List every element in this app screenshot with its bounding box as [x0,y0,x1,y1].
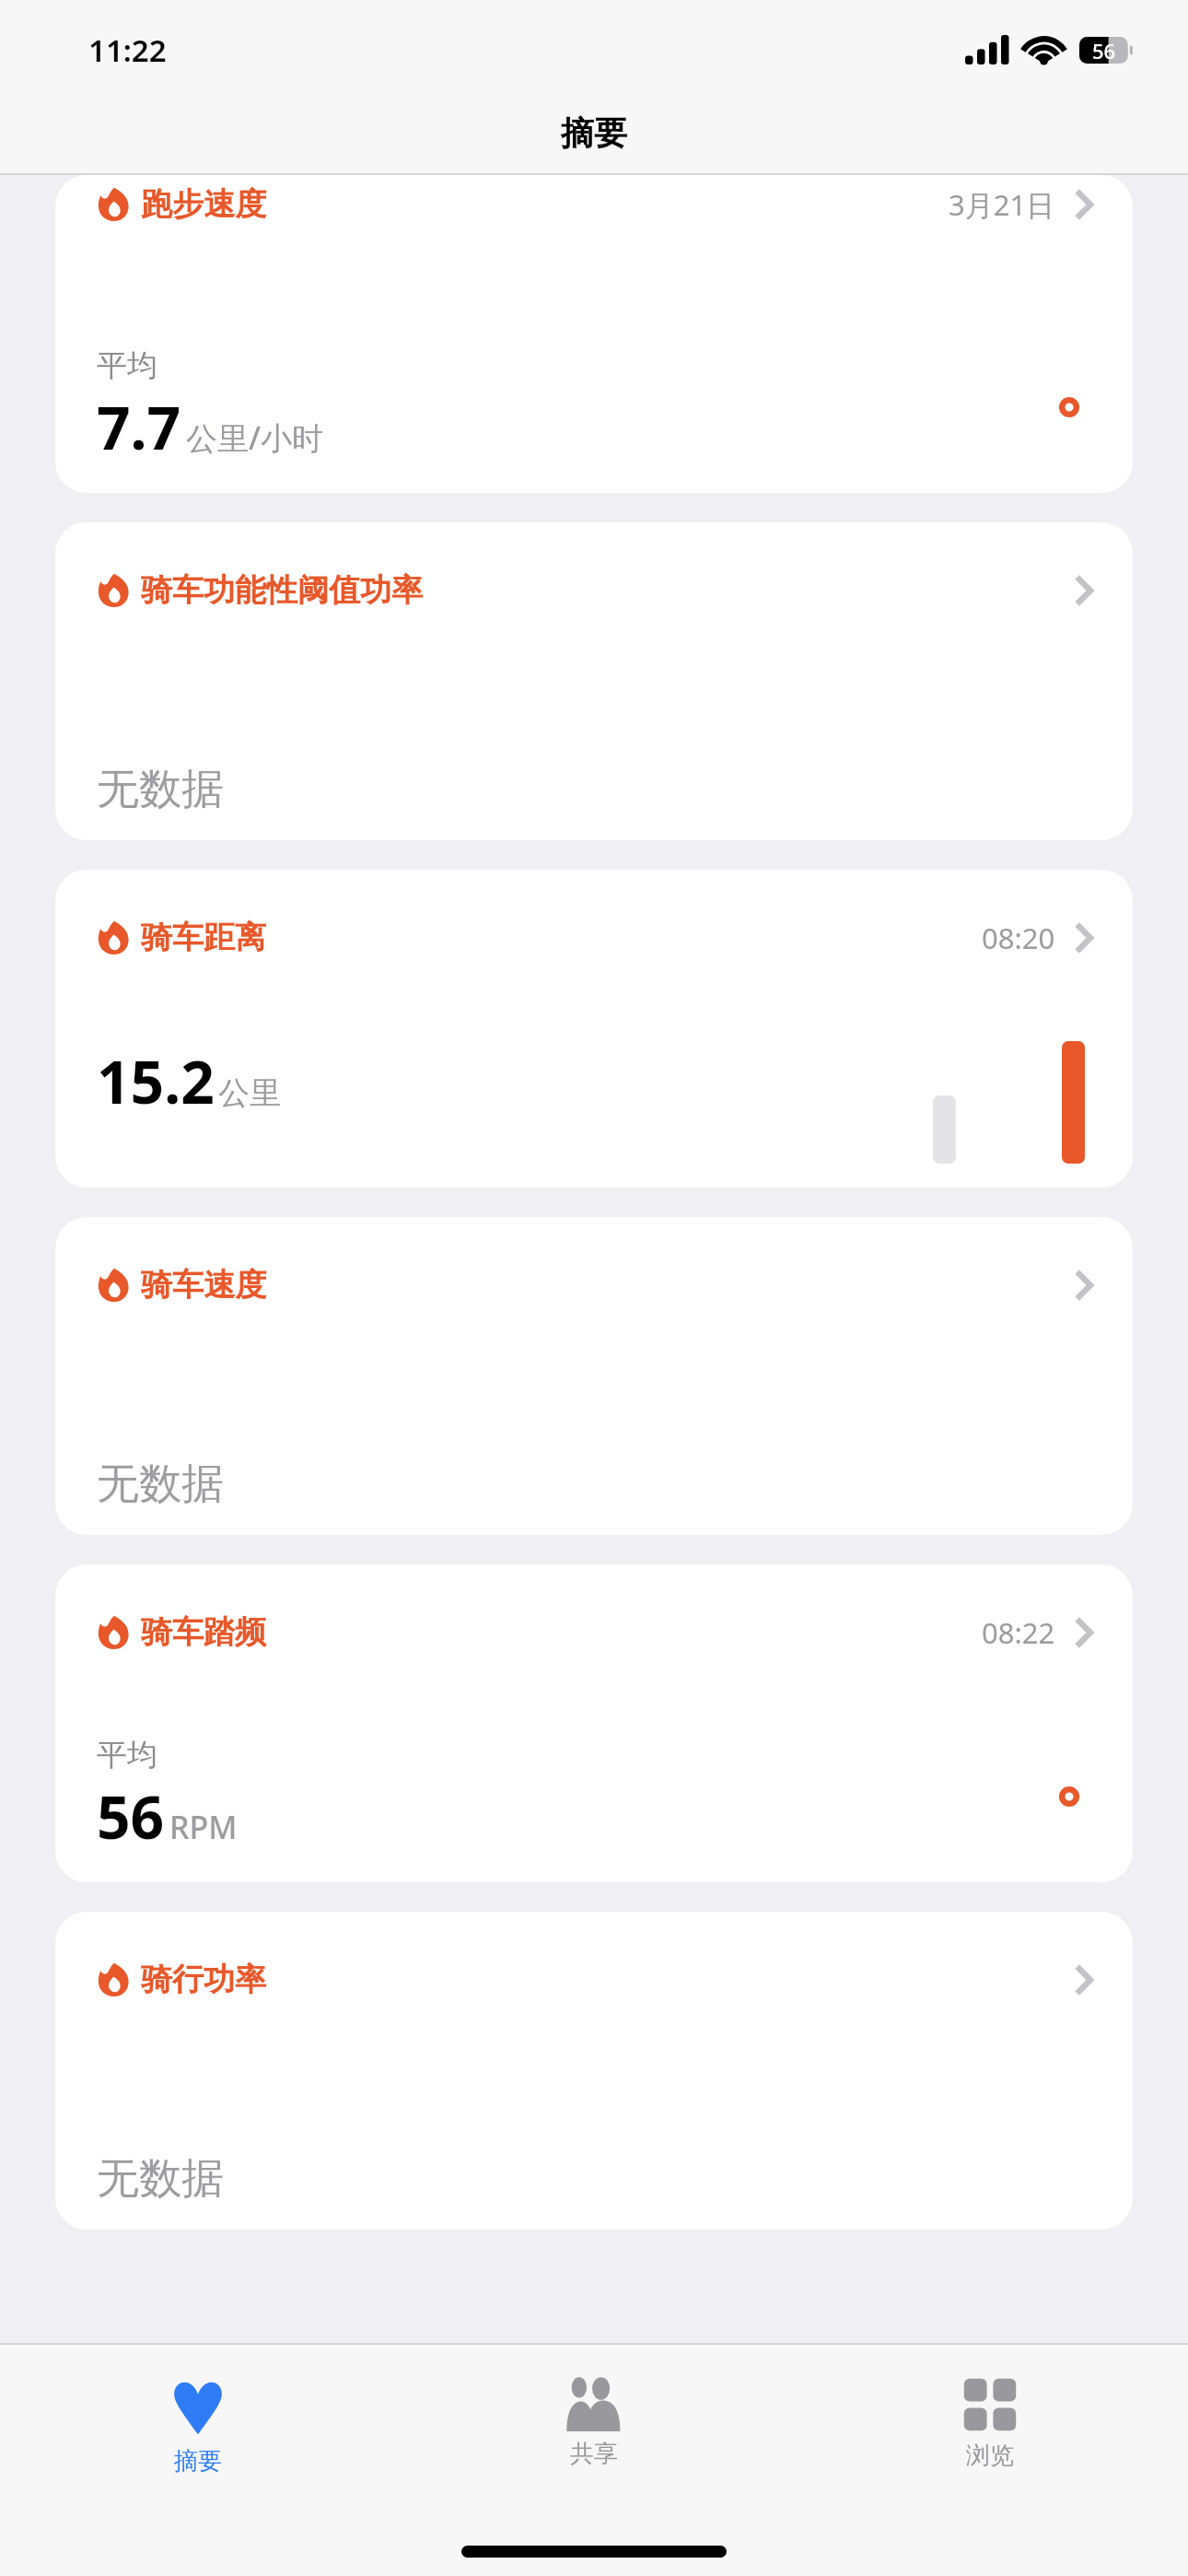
button[interactable]: 摘要 [0,2372,396,2480]
staticText: RPM [169,1806,238,1848]
staticText: 浏览 [966,2441,1014,2471]
other: 摘要 [167,2376,229,2439]
button[interactable]: 骑车速度 [55,1217,1133,1535]
staticText: 11:22 [88,29,167,71]
staticText: 无数据 [97,1458,224,1511]
staticText: 56 [1092,37,1116,64]
staticText: 公里/小时 [186,416,324,459]
staticText: 08:22 [982,1613,1055,1652]
staticText: 56 [97,1776,165,1856]
staticText: 骑行功率 [141,1960,266,1999]
staticText: 骑车功能性阈值功率 [141,570,423,610]
staticText: 摘要 [174,2446,222,2476]
button[interactable]: 骑车功能性阈值功率 [55,522,1133,840]
staticText: 共享 [570,2439,618,2469]
staticText: 无数据 [97,2152,224,2206]
staticText: 平均 [97,346,157,385]
staticText: 摘要 [561,112,627,154]
button[interactable]: 骑车踏频 [55,1564,1133,1882]
staticText: 骑车速度 [141,1265,266,1305]
staticText: 08:20 [982,919,1055,957]
staticText: 7.7 [97,387,181,467]
staticText: 15.2 [97,1041,215,1121]
staticText: 平均 [97,1736,157,1774]
button[interactable]: 跑步速度 [55,175,1133,493]
button[interactable]: 浏览 [792,2372,1188,2475]
other: 浏览 [961,2376,1019,2433]
button[interactable]: 骑车距离 [55,870,1133,1188]
staticText: 3月21日 [949,185,1055,224]
button[interactable]: 骑行功率 [55,1912,1133,2230]
staticText: 无数据 [97,763,224,816]
staticText: 骑车距离 [141,918,266,957]
other: 共享 [564,2376,624,2431]
staticText: 公里 [218,1073,281,1113]
staticText: 跑步速度 [141,184,266,224]
staticText: 骑车踏频 [141,1612,266,1652]
button[interactable]: 共享 [396,2372,792,2473]
